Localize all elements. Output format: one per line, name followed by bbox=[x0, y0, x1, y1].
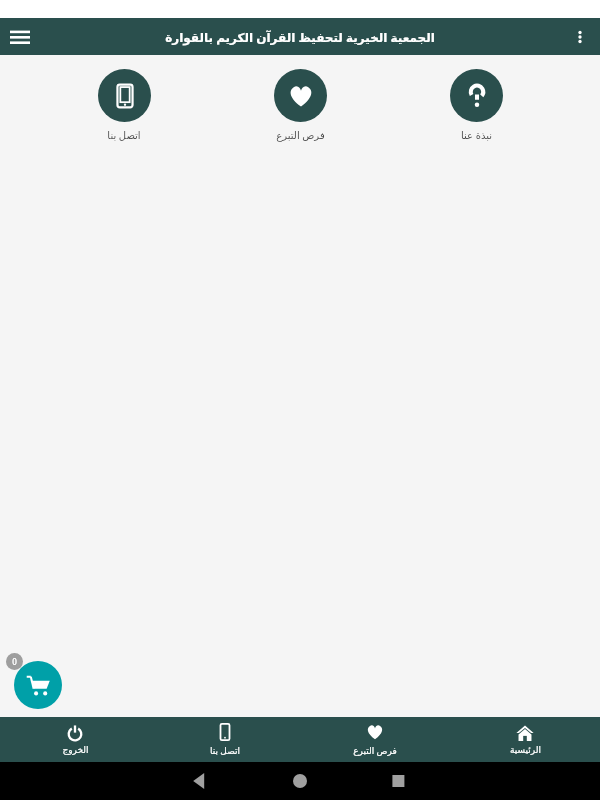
staticText: فرص التبرع bbox=[276, 128, 325, 142]
staticText: فرص التبرع bbox=[353, 744, 397, 756]
staticText: اتصل بنا bbox=[210, 744, 240, 756]
button[interactable]: Contact us bbox=[150, 717, 300, 762]
button[interactable]: Menu bbox=[0, 18, 40, 55]
button[interactable]: Exit bbox=[0, 717, 150, 762]
staticText: الجمعية الخيرية لتحفيظ القرآن الكريم بال… bbox=[165, 29, 435, 45]
button[interactable]: Donation opportunities bbox=[240, 69, 360, 142]
button[interactable]: About us bbox=[416, 69, 536, 142]
staticText: اتصل بنا bbox=[107, 128, 141, 142]
staticText: الرئيسية bbox=[510, 745, 541, 755]
button[interactable]: Home bbox=[450, 717, 600, 762]
button[interactable]: More options bbox=[560, 18, 600, 55]
staticText: نبذة عنا bbox=[461, 128, 492, 142]
button[interactable]: Donation opportunities bbox=[300, 717, 450, 762]
button[interactable]: Contact us bbox=[64, 69, 184, 142]
other: Contact us bbox=[98, 69, 151, 122]
staticText: الخروج bbox=[62, 745, 89, 755]
button[interactable]: Cart bbox=[14, 661, 62, 709]
staticText: 0 bbox=[12, 656, 17, 667]
other: About us bbox=[450, 69, 503, 122]
other: Donation opportunities bbox=[274, 69, 327, 122]
